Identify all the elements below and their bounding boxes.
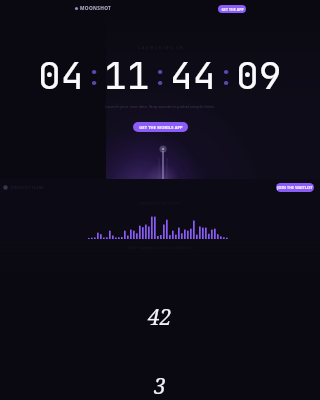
staticText: GET THE MOBILE APP — [139, 125, 183, 130]
staticText: 09 — [236, 50, 282, 100]
staticText: 3 — [154, 372, 166, 400]
staticText: GET THE APP — [221, 7, 244, 12]
button[interactable]: Moonshot home — [74, 5, 112, 12]
staticText: PRODUCT HUNT — [11, 185, 45, 190]
staticText: L A U N C H I N G I N — [138, 45, 183, 50]
staticText: Launch your next idea. Stop wondering wh… — [104, 104, 216, 109]
staticText: 44 — [170, 50, 216, 100]
staticText: JOIN THE WAITLIST — [277, 185, 313, 190]
staticText: 11 — [104, 50, 150, 100]
staticText: Daily engagement across the platform — [128, 245, 193, 250]
staticText: 04 — [38, 50, 84, 100]
button[interactable]: GET THE APP — [218, 5, 246, 13]
staticText: MOONSHOT — [80, 5, 112, 12]
button[interactable]: JOIN THE WAITLIST — [276, 183, 314, 192]
staticText: : — [86, 57, 103, 93]
staticText: : — [218, 57, 235, 93]
button[interactable]: GET THE MOBILE APP — [133, 122, 188, 132]
staticText: MONTHLY ACTIVITY — [140, 201, 181, 206]
staticText: 42 — [148, 303, 172, 332]
staticText: : — [152, 57, 169, 93]
button[interactable]: Brand — [2, 184, 45, 191]
